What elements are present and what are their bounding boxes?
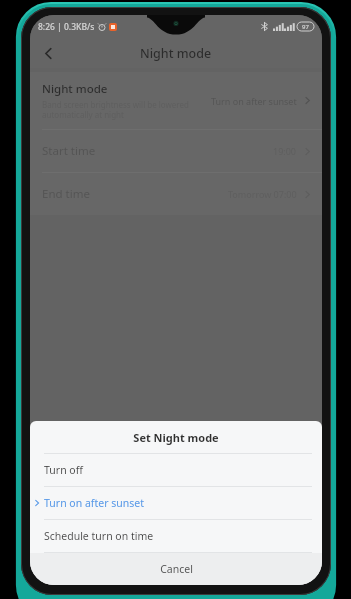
staticText: Set Night mode [133,430,219,445]
staticText: Turn on after sunset [211,95,297,107]
button[interactable]: Back [34,39,62,67]
staticText: Schedule turn on time [44,529,154,543]
staticText: Turn off [44,463,83,477]
button[interactable]: Cancel [30,553,322,585]
staticText: Night mode [42,81,108,97]
staticText: Cancel [160,562,193,576]
button[interactable]: Turn off [30,454,322,486]
staticText: Turn on after sunset [44,496,144,510]
button[interactable]: Schedule turn on time [30,520,322,552]
button[interactable]: Turn on after sunset [30,487,322,519]
staticText: Night mode [140,45,212,62]
staticText: 8:26 | 0.3KB/s [38,21,95,33]
button[interactable]: Night mode [30,72,322,129]
staticText: 97 [302,23,309,31]
